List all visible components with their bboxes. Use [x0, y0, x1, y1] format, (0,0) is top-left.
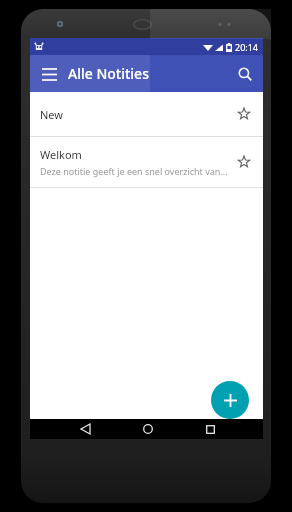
button[interactable]: Recent apps [199, 419, 221, 439]
button[interactable]: New [30, 92, 263, 136]
button[interactable]: Add note [211, 381, 249, 419]
staticText: 20:14 [235, 41, 259, 53]
staticText: New [40, 107, 63, 122]
button[interactable]: Open navigation drawer [34, 59, 64, 89]
button[interactable]: Favourite [231, 101, 257, 127]
button[interactable]: Favourite [231, 149, 257, 175]
staticText: Alle Notities [68, 64, 149, 83]
button[interactable]: Home [137, 419, 159, 439]
staticText: Deze notitie geeft je een snel overzicht… [40, 165, 228, 177]
staticText: Welkom [40, 147, 82, 162]
button[interactable]: Search [230, 59, 260, 89]
button[interactable]: Welkom [30, 137, 263, 187]
button[interactable]: Back [74, 419, 96, 439]
